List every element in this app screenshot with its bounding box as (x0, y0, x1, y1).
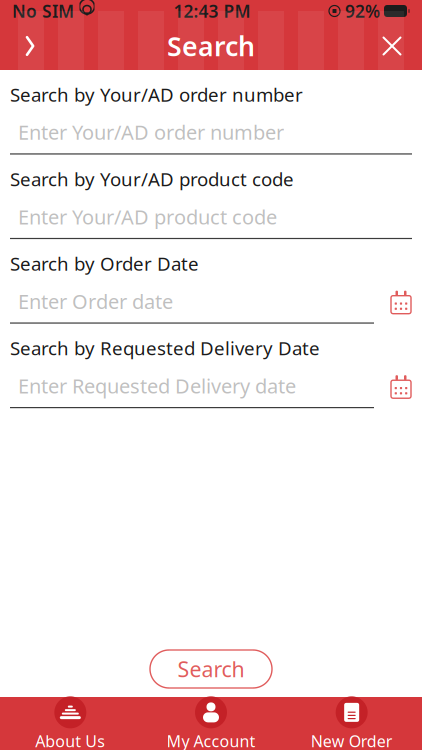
staticText: Search by Requested Delivery Date (10, 336, 320, 360)
button[interactable]: My Account (141, 691, 281, 750)
staticText: About Us (35, 730, 105, 750)
staticText: Search (177, 655, 244, 683)
button[interactable]: Enter Your/AD order number (0, 107, 422, 153)
button[interactable]: Back (8, 24, 52, 68)
staticText: Enter Requested Delivery date (18, 372, 296, 399)
button[interactable]: Enter Order date (0, 276, 376, 322)
staticText: Enter Your/AD order number (18, 119, 284, 145)
button[interactable]: New Order (281, 691, 422, 750)
button[interactable]: Close (370, 24, 414, 68)
staticText: Enter Order date (18, 288, 173, 314)
button[interactable]: Search (150, 650, 272, 688)
staticText: No SIM (12, 0, 74, 22)
staticText: New Order (311, 730, 393, 750)
staticText: Enter Your/AD product code (18, 203, 277, 230)
staticText: 92% (345, 0, 380, 22)
button[interactable]: Enter Your/AD product code (0, 191, 422, 238)
staticText: Search by Your/AD product code (10, 166, 294, 191)
button[interactable]: About Us (0, 691, 141, 750)
button[interactable]: Choose date (376, 284, 422, 315)
button[interactable]: Choose date (376, 368, 422, 399)
staticText: Search by Your/AD order number (10, 82, 303, 107)
staticText: Search by Order Date (10, 251, 199, 276)
staticText: Search (167, 28, 255, 64)
button[interactable]: Enter Requested Delivery date (0, 360, 376, 407)
staticText: 12:43 PM (173, 0, 250, 22)
staticText: My Account (166, 730, 255, 750)
